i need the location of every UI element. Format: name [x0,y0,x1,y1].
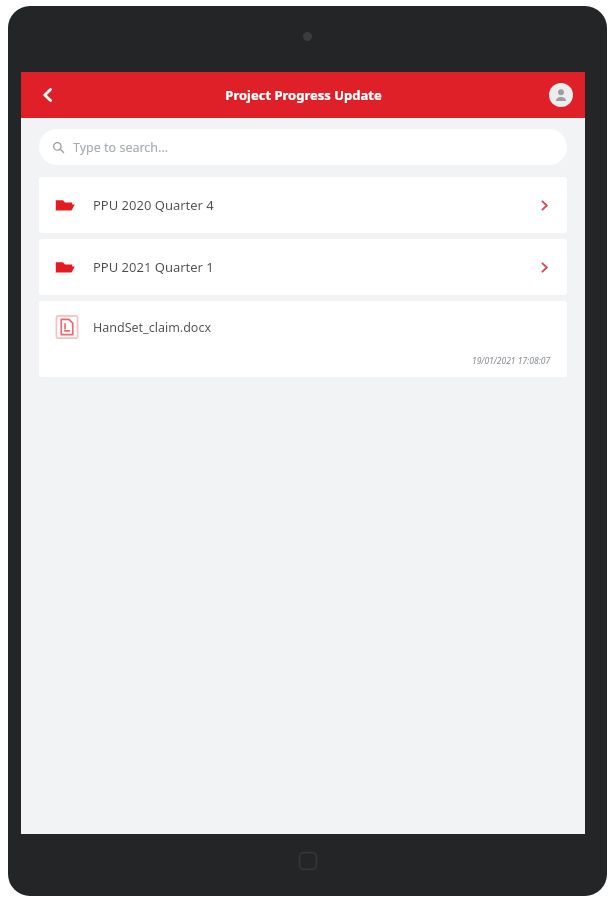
button[interactable]: Back [29,76,67,114]
button[interactable]: Account [549,83,573,107]
staticText: PPU 2020 Quarter 4 [93,196,214,214]
staticText: PPU 2021 Quarter 1 [93,258,214,276]
button[interactable]: PPU 2020 Quarter 4 [39,177,567,233]
button[interactable]: PPU 2021 Quarter 1 [39,239,567,295]
staticText: Type to search... [73,139,169,156]
button[interactable]: HandSet_claim.docx [39,301,567,377]
staticText: Project Progress Update [225,86,382,104]
staticText: 19/01/2021 17:08:07 [472,355,551,367]
button[interactable]: Type to search... [39,129,567,165]
staticText: HandSet_claim.docx [93,319,212,336]
